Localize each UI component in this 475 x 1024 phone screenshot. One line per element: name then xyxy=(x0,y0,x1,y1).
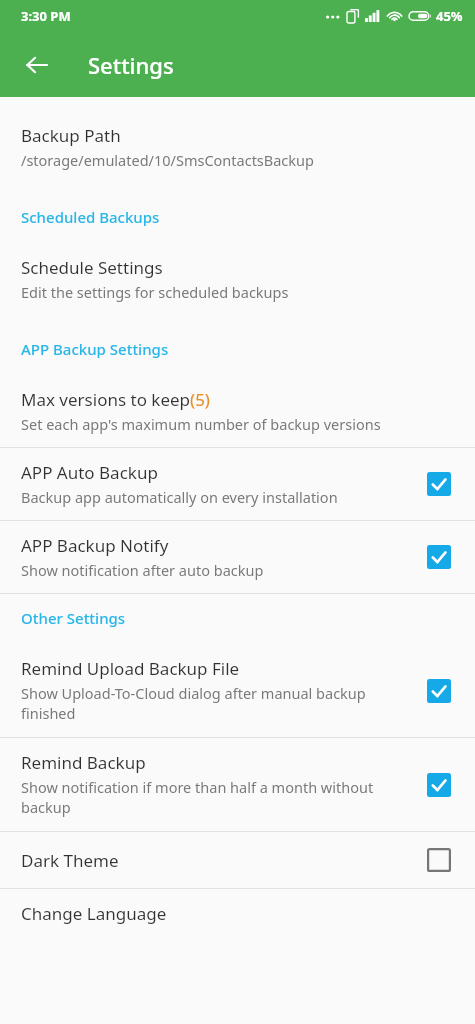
staticText: Show notification if more than half a mo… xyxy=(21,777,410,818)
staticText: Set each app's maximum number of backup … xyxy=(21,414,381,434)
button[interactable]: Unchecked xyxy=(424,845,454,875)
staticText: Max versions to keep(5) xyxy=(21,388,210,411)
button[interactable]: APP Auto Backup xyxy=(0,448,475,520)
staticText: Schedule Settings xyxy=(21,256,163,279)
staticText: 3:30 PM xyxy=(21,7,71,25)
staticText: Settings xyxy=(88,50,174,80)
staticText: Remind Upload Backup File xyxy=(21,657,240,680)
staticText: Scheduled Backups xyxy=(21,207,160,227)
staticText: 45% xyxy=(436,7,463,25)
staticText: Dark Theme xyxy=(21,849,119,872)
button[interactable]: Max versions to keep(5) xyxy=(0,375,475,447)
button[interactable]: Checked xyxy=(424,770,454,800)
button[interactable]: APP Backup Notify xyxy=(0,521,475,593)
button[interactable]: Backup Path xyxy=(0,111,475,183)
staticText: /storage/emulated/10/SmsContactsBackup xyxy=(21,150,314,170)
staticText: APP Backup Notify xyxy=(21,534,169,557)
button[interactable]: Checked xyxy=(424,469,454,499)
staticText: Other Settings xyxy=(21,608,126,628)
staticText: Show Upload-To-Cloud dialog after manual… xyxy=(21,683,410,724)
staticText: Edit the settings for scheduled backups xyxy=(21,282,289,302)
staticText: APP Backup Settings xyxy=(21,339,169,359)
staticText: Change Language xyxy=(21,902,167,925)
staticText: Show notification after auto backup xyxy=(21,560,264,580)
button[interactable]: Back xyxy=(12,40,62,90)
staticText: APP Auto Backup xyxy=(21,461,158,484)
button[interactable]: Checked xyxy=(424,542,454,572)
button[interactable]: Schedule Settings xyxy=(0,243,475,315)
button[interactable]: Checked xyxy=(424,676,454,706)
staticText: Remind Backup xyxy=(21,751,146,774)
staticText: Backup Path xyxy=(21,124,121,147)
button[interactable]: Dark Theme xyxy=(0,832,475,888)
button[interactable]: Remind Backup xyxy=(0,738,475,831)
staticText: Backup app automatically on every instal… xyxy=(21,487,338,507)
button[interactable]: Remind Upload Backup File xyxy=(0,644,475,737)
button[interactable]: Change Language xyxy=(0,889,475,938)
